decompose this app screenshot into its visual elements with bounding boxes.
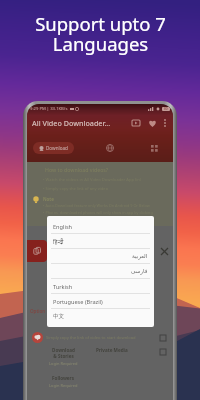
staticText: Login Required xyxy=(49,383,78,388)
staticText: Followers xyxy=(52,375,74,381)
button[interactable]: Videos xyxy=(130,117,142,129)
button[interactable]: 中文 xyxy=(47,309,154,324)
button[interactable]: Portuguese (Brazil) xyxy=(47,294,154,309)
staticText: How to download videos? xyxy=(45,166,109,173)
button[interactable]: More options xyxy=(160,118,170,128)
button[interactable]: العربية xyxy=(47,249,154,264)
staticText: हिन्दी xyxy=(53,238,64,246)
button[interactable]: Favourites xyxy=(146,117,158,129)
staticText: العربية xyxy=(132,253,148,260)
staticText: All Video Downloader... xyxy=(32,118,111,128)
button[interactable]: English xyxy=(47,219,154,234)
button[interactable]: Select xyxy=(158,333,167,342)
staticText: 80 xyxy=(164,107,168,111)
staticText: 9:29 PM | 33.1KB/s xyxy=(30,106,68,112)
staticText: فارسی xyxy=(131,268,148,275)
button[interactable]: Select xyxy=(158,347,167,356)
staticText: Note xyxy=(43,196,54,202)
button[interactable]: Download xyxy=(33,142,74,154)
staticText: Download & Stories xyxy=(52,347,75,359)
staticText: English xyxy=(53,223,73,231)
staticText: Download xyxy=(46,145,68,151)
button[interactable]: Turkish xyxy=(47,279,154,294)
button[interactable]: हिन्दी xyxy=(47,234,154,249)
button[interactable]: Downloads xyxy=(27,240,47,262)
staticText: Option xyxy=(30,308,46,314)
button[interactable]: Browser xyxy=(103,141,117,155)
staticText: Support upto 7 Languages xyxy=(35,11,166,57)
button[interactable]: Close xyxy=(157,244,171,258)
staticText: Private Media xyxy=(96,347,128,353)
staticText: Simply copy the link of video to start d… xyxy=(46,335,136,341)
staticText: Login Required xyxy=(49,361,78,366)
staticText: 中文 xyxy=(53,313,65,320)
staticText: Turkish xyxy=(53,283,73,291)
button[interactable]: فارسی xyxy=(47,264,154,279)
button[interactable]: Downloads grid xyxy=(147,141,161,155)
staticText: Portuguese (Brazil) xyxy=(53,298,103,306)
